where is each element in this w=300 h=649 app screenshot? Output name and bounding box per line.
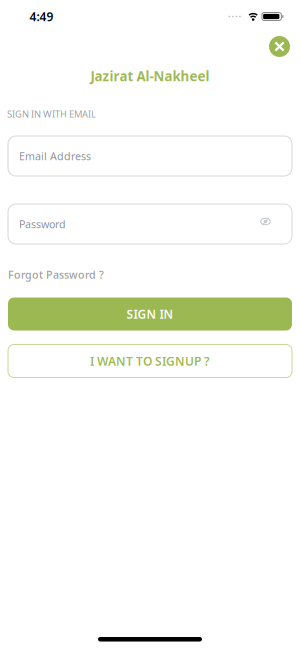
button[interactable]: Forgot Password ?	[8, 267, 104, 281]
staticText: I WANT TO SIGNUP ?	[90, 353, 210, 369]
staticText: Password	[19, 217, 66, 231]
staticText: Forgot Password ?	[8, 267, 104, 282]
staticText: SIGN IN	[126, 306, 173, 322]
button[interactable]: I WANT TO SIGNUP ?	[8, 344, 292, 377]
button[interactable]: Password	[8, 204, 292, 244]
button[interactable]: SIGN IN	[8, 297, 292, 330]
staticText: Jazirat Al-Nakheel	[90, 67, 209, 85]
staticText: SIGN IN WITH EMAIL	[7, 108, 96, 120]
button[interactable]: Close	[269, 36, 290, 57]
staticText: Email Address	[19, 149, 91, 163]
staticText: 4:49	[29, 8, 53, 24]
button[interactable]: Email Address	[8, 136, 292, 176]
